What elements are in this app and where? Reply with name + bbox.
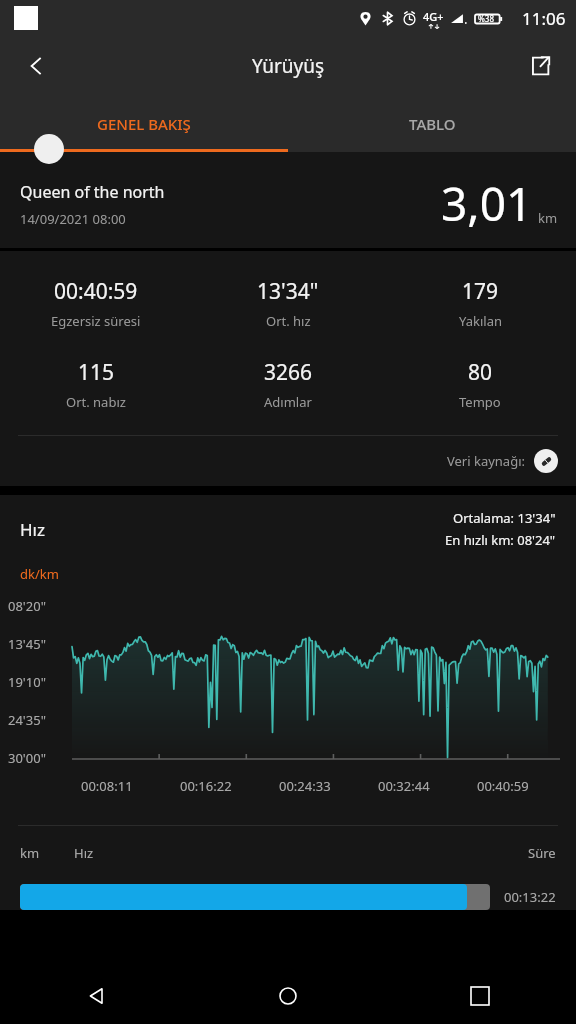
staticText: 14/09/2021 08:00 xyxy=(20,210,126,228)
button[interactable]: TABLO xyxy=(288,96,576,152)
staticText: 115 xyxy=(78,358,115,387)
button[interactable]: 13'34" xyxy=(192,277,384,330)
button[interactable]: 00:13:22 xyxy=(20,884,556,910)
staticText: 11:06 xyxy=(522,7,566,30)
staticText: 30'00" xyxy=(8,749,46,767)
staticText: 00:32:44 xyxy=(378,777,430,795)
staticText: 3,01 xyxy=(441,172,533,235)
staticText: 00:24:33 xyxy=(279,777,331,795)
staticText: km xyxy=(20,844,40,862)
staticText: %38 xyxy=(478,13,494,24)
staticText: dk/km xyxy=(20,565,59,583)
staticText: 13'45" xyxy=(8,635,46,653)
staticText: 4G+ xyxy=(423,9,444,24)
staticText: Süre xyxy=(528,844,556,862)
button[interactable]: Back xyxy=(12,42,60,90)
staticText: En hızlı km: 08'24" xyxy=(445,531,556,549)
staticText: 00:40:59 xyxy=(54,277,138,306)
staticText: Ort. hız xyxy=(266,312,311,330)
staticText: 00:13:22 xyxy=(504,888,556,906)
staticText: 19'10" xyxy=(8,673,46,691)
staticText: Yakılan xyxy=(459,312,502,330)
staticText: 80 xyxy=(468,358,493,387)
staticText: 00:16:22 xyxy=(180,777,232,795)
button[interactable]: 3266 xyxy=(192,358,384,411)
staticText: Ort. nabız xyxy=(66,393,126,411)
staticText: 00:08:11 xyxy=(81,777,133,795)
staticText: Ortalama: 13'34" xyxy=(453,509,556,527)
button[interactable]: 115 xyxy=(0,358,192,411)
staticText: 13'34" xyxy=(257,277,319,306)
staticText: Veri kaynağı: xyxy=(447,452,526,470)
staticText: km xyxy=(538,209,558,227)
staticText: 24'35" xyxy=(8,711,46,729)
staticText: 08'20" xyxy=(8,597,46,615)
button[interactable]: GENEL BAKIŞ xyxy=(0,96,288,152)
staticText: Hız xyxy=(20,518,45,541)
button[interactable]: Recent apps xyxy=(384,968,576,1024)
staticText: Queen of the north xyxy=(20,181,165,203)
staticText: Adımlar xyxy=(264,393,312,411)
staticText: Hız xyxy=(74,844,94,862)
button[interactable]: Home xyxy=(192,968,384,1024)
button[interactable]: 179 xyxy=(384,277,576,330)
staticText: Egzersiz süresi xyxy=(51,312,141,330)
button[interactable]: Back xyxy=(0,968,192,1024)
button[interactable]: 00:40:59 xyxy=(0,277,192,330)
staticText: 3266 xyxy=(264,358,313,387)
staticText: 00:40:59 xyxy=(477,777,529,795)
staticText: Yürüyüş xyxy=(252,53,325,79)
staticText: TABLO xyxy=(409,114,456,134)
staticText: 179 xyxy=(462,277,499,306)
button[interactable]: Veri kaynağı xyxy=(534,449,558,473)
staticText: GENEL BAKIŞ xyxy=(97,114,191,134)
staticText: Tempo xyxy=(459,393,501,411)
button[interactable]: Share xyxy=(516,42,564,90)
button[interactable]: 80 xyxy=(384,358,576,411)
